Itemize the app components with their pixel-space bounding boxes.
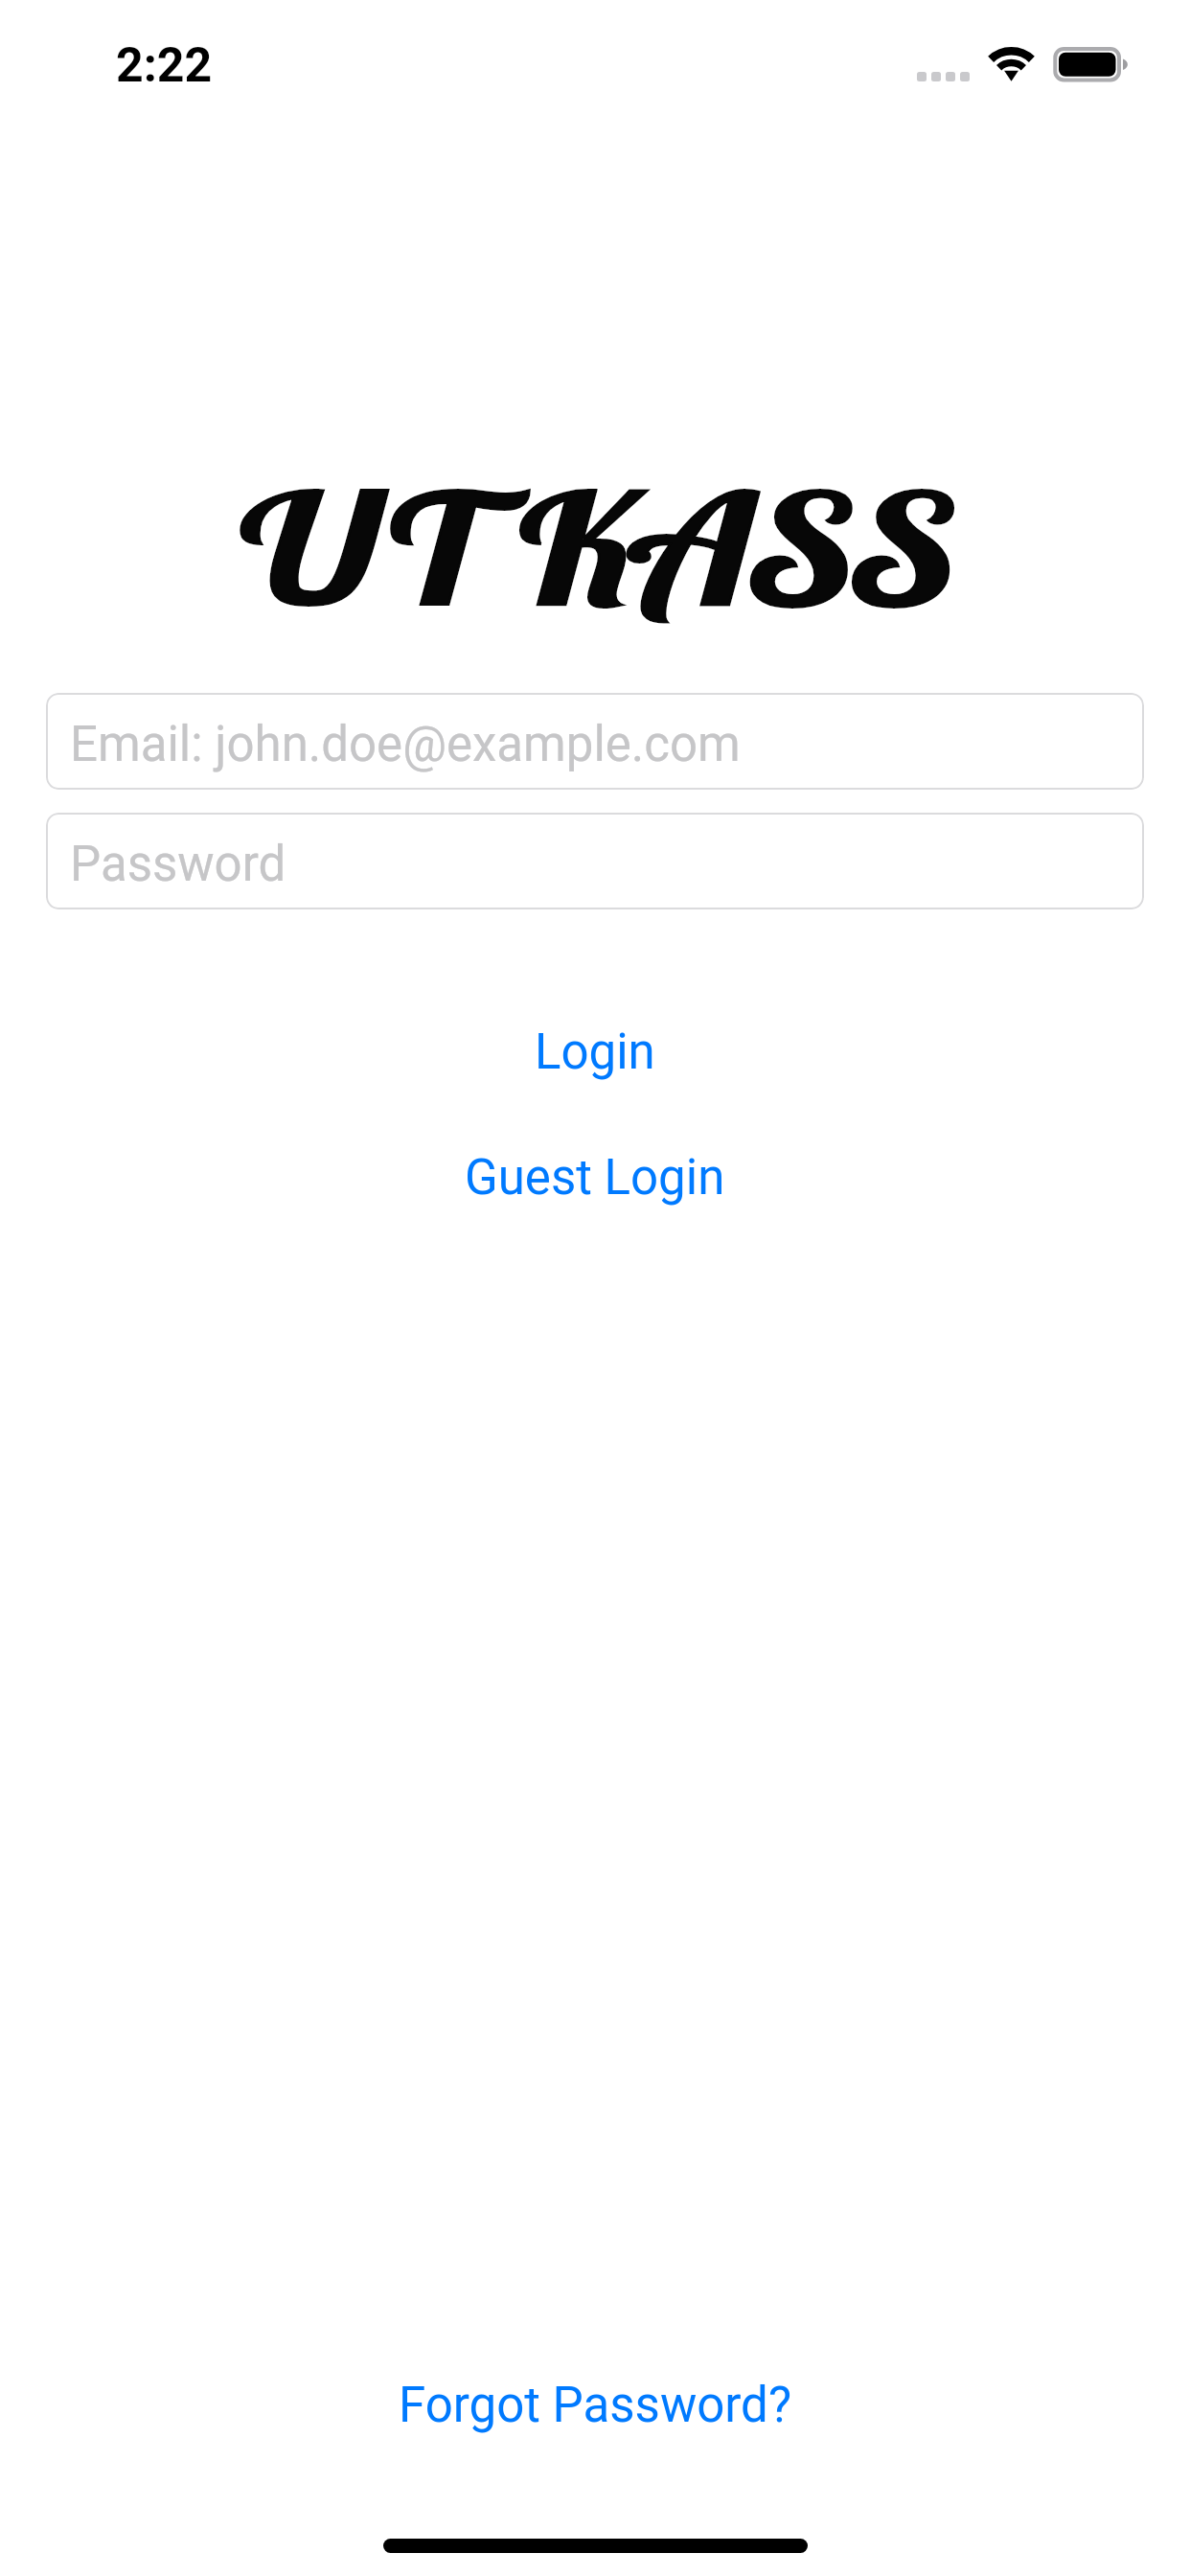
other: Wi-Fi (984, 42, 1040, 86)
staticText: Forgot Password? (399, 2377, 791, 2434)
staticText: UTKASS (230, 451, 956, 643)
button[interactable]: Login (512, 1018, 678, 1087)
button[interactable]: Email: john.doe@example.com (46, 693, 1144, 790)
button[interactable]: Forgot Password? (376, 2371, 814, 2440)
staticText: UTKASS (230, 451, 956, 643)
staticText: Password (70, 836, 286, 893)
staticText: Login (535, 1023, 655, 1081)
staticText: Guest Login (465, 1149, 725, 1207)
button[interactable]: Guest Login (442, 1143, 748, 1212)
other: Battery full (1050, 42, 1134, 88)
button[interactable]: Password (46, 813, 1144, 909)
staticText: Email: john.doe@example.com (70, 716, 741, 773)
staticText: 2:22 (116, 37, 213, 94)
other: Cellular signal (915, 59, 969, 94)
